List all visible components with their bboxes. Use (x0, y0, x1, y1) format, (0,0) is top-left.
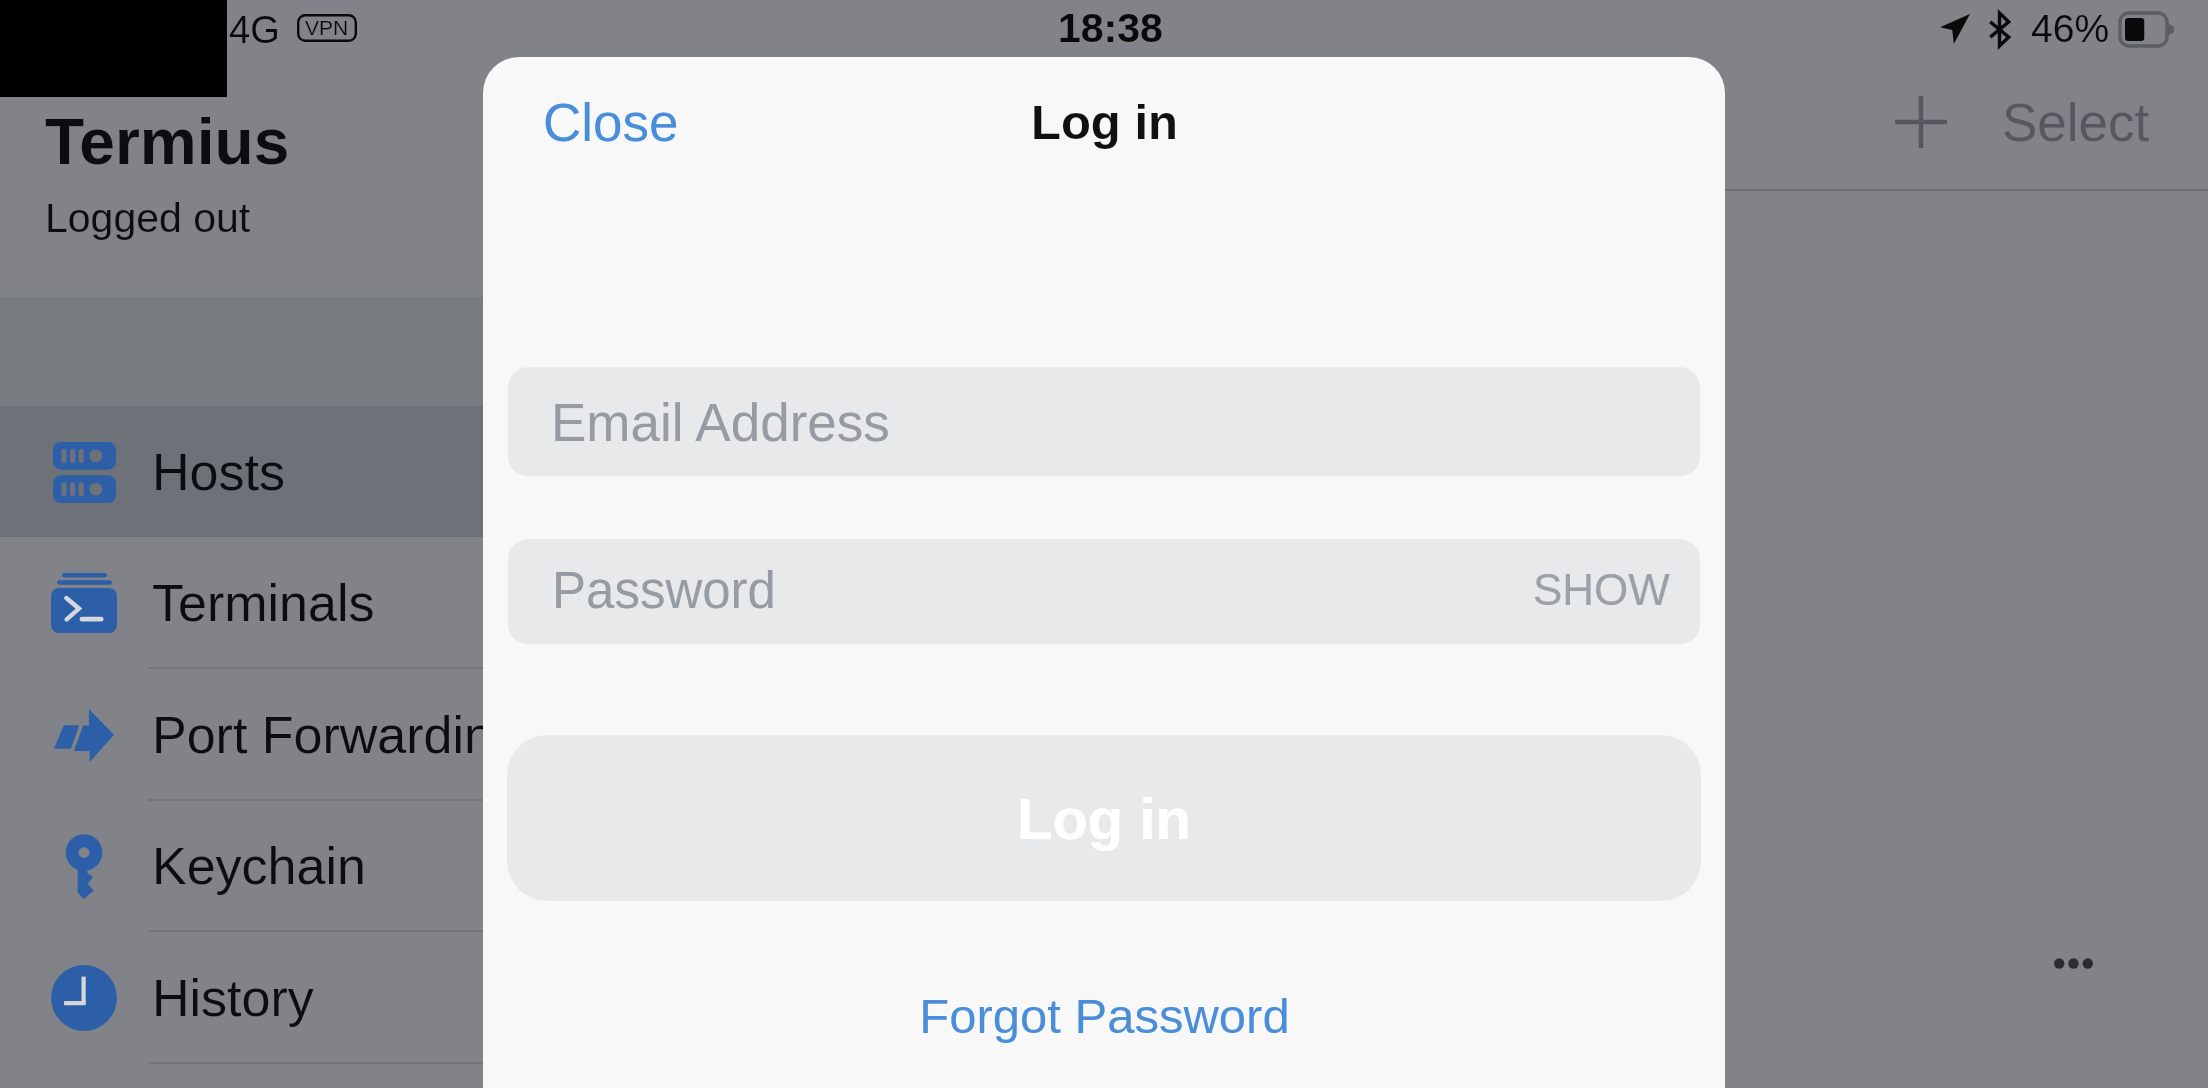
button[interactable]: Close (546, 93, 682, 152)
button[interactable]: Password (508, 539, 1700, 644)
button[interactable]: SHOW (1534, 567, 1671, 616)
staticText: Logged out (45, 195, 251, 241)
staticText: 46% (2031, 7, 2110, 51)
staticText: Port Forwarding (152, 706, 522, 764)
staticText: Select (2002, 93, 2150, 152)
button[interactable] (0, 406, 760, 537)
button[interactable]: Select (2002, 93, 2150, 152)
staticText: Terminals (152, 574, 375, 632)
staticText: Forgot Password (919, 989, 1290, 1044)
button[interactable] (0, 800, 760, 931)
button[interactable]: Email Address (508, 367, 1700, 476)
staticText: Password (552, 562, 776, 619)
staticText: 18:38 (1058, 5, 1163, 51)
staticText: Termius (45, 106, 290, 178)
staticText: 4G (229, 9, 280, 51)
staticText: SHOW (1533, 565, 1670, 614)
button[interactable] (0, 537, 760, 668)
staticText: VPN (305, 16, 349, 39)
staticText: Hosts (152, 443, 285, 501)
button[interactable]: Forgot Password (919, 989, 1290, 1044)
button[interactable] (0, 669, 760, 800)
staticText: History (152, 969, 314, 1027)
staticText: Log in (1031, 95, 1178, 150)
staticText: Log in (1017, 786, 1191, 851)
button[interactable]: Add (1881, 80, 1951, 164)
staticText: Keychain (152, 837, 366, 895)
button[interactable] (0, 932, 760, 1063)
staticText: Close (543, 93, 679, 152)
staticText: Email Address (551, 393, 890, 452)
button[interactable]: More options (2035, 925, 2111, 1001)
